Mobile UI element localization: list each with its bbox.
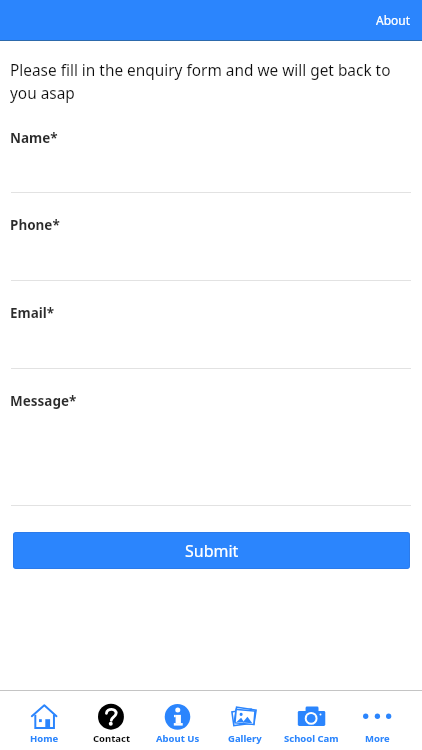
staticText: Submit bbox=[185, 540, 239, 562]
button[interactable]: More bbox=[344, 691, 411, 750]
staticText: More bbox=[365, 732, 390, 745]
button[interactable]: Submit bbox=[13, 532, 410, 569]
button[interactable]: Gallery bbox=[211, 691, 278, 750]
button[interactable]: About Us bbox=[144, 691, 211, 750]
button[interactable]: Home bbox=[11, 691, 78, 750]
staticText: Name* bbox=[10, 129, 58, 147]
button[interactable]: School Cam bbox=[278, 691, 345, 750]
other: Contact bbox=[98, 703, 125, 730]
staticText: Gallery bbox=[228, 732, 262, 745]
staticText: Email* bbox=[10, 304, 55, 322]
staticText: Message* bbox=[10, 392, 77, 410]
staticText: Phone* bbox=[10, 216, 60, 234]
staticText: About Us bbox=[156, 732, 200, 745]
staticText: Contact bbox=[93, 732, 131, 745]
other: About Us bbox=[164, 703, 191, 730]
staticText: About bbox=[376, 12, 411, 28]
other: Gallery bbox=[231, 703, 258, 730]
staticText: Please fill in the enquiry form and we w… bbox=[10, 60, 412, 104]
staticText: School Cam bbox=[284, 732, 339, 745]
other: School Cam bbox=[298, 703, 325, 730]
button[interactable]: Contact bbox=[78, 691, 145, 750]
other: More bbox=[364, 703, 391, 730]
button[interactable]: About bbox=[352, 2, 422, 38]
other: Home bbox=[31, 703, 58, 730]
staticText: Home bbox=[30, 732, 59, 745]
